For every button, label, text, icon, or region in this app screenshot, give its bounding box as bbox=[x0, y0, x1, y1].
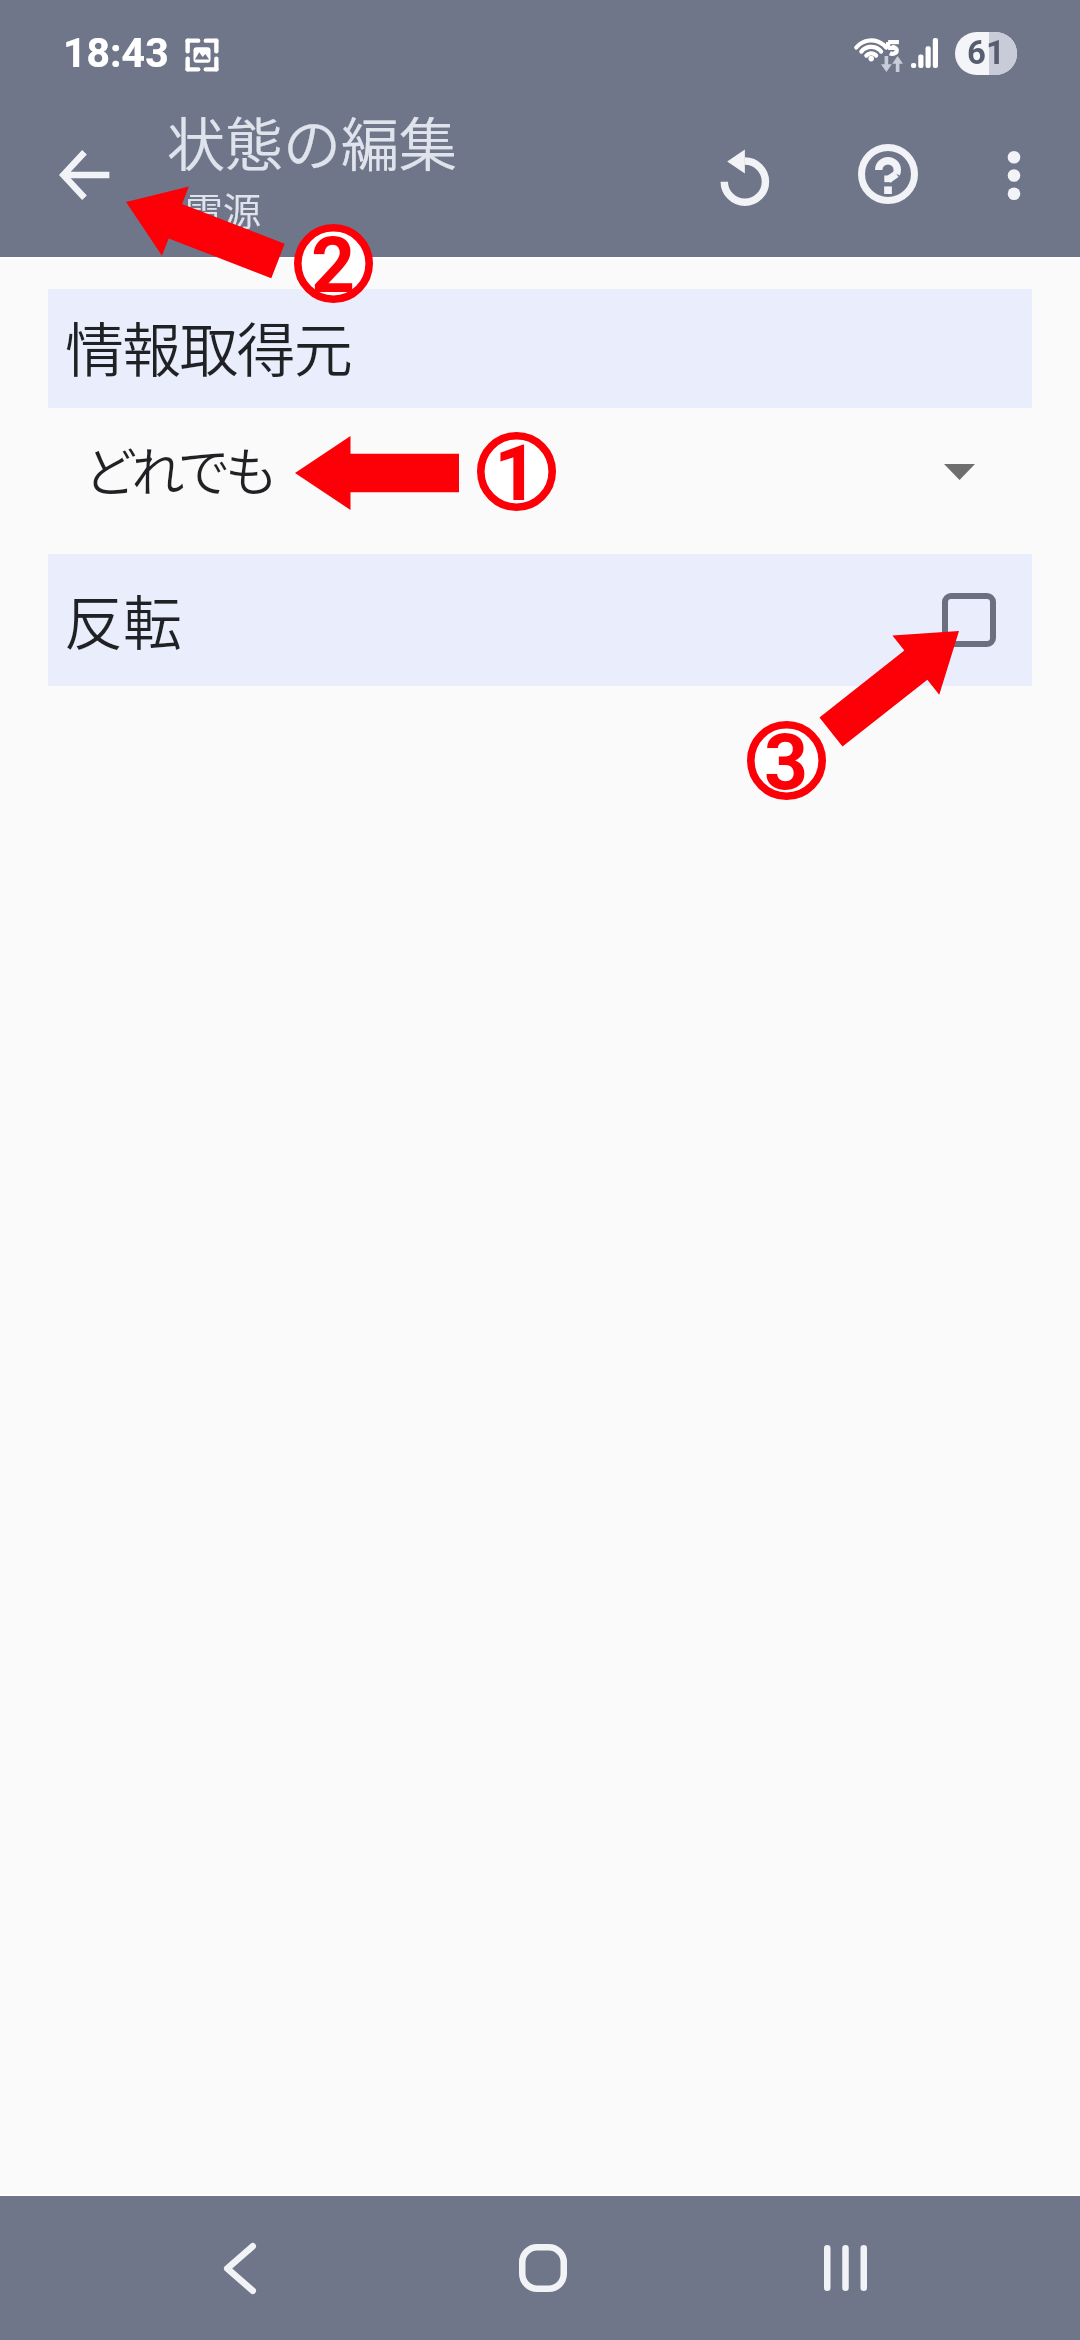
staticText: 61 bbox=[967, 33, 1005, 72]
staticText: 反転 bbox=[64, 577, 183, 662]
staticText: 18:43 bbox=[63, 29, 169, 77]
button[interactable]: Navigate up bbox=[37, 127, 133, 223]
button[interactable]: 反転 bbox=[48, 554, 1032, 686]
button[interactable]: Help bbox=[840, 126, 936, 222]
button[interactable]: More options bbox=[966, 127, 1062, 223]
staticText: 電源 bbox=[185, 181, 262, 236]
staticText: どれでも bbox=[84, 431, 273, 508]
button[interactable]: Back bbox=[180, 2218, 300, 2318]
staticText: 2 bbox=[311, 221, 356, 300]
button[interactable]: どれでも bbox=[0, 408, 1080, 554]
staticText: 1 bbox=[494, 429, 539, 508]
staticText: 状態の編集 bbox=[167, 99, 458, 183]
button[interactable]: Undo bbox=[696, 127, 792, 223]
button[interactable]: Home bbox=[483, 2218, 603, 2318]
staticText: 情報取得元 bbox=[65, 304, 352, 389]
button[interactable]: Recent apps bbox=[785, 2218, 905, 2318]
staticText: 3 bbox=[764, 718, 809, 797]
